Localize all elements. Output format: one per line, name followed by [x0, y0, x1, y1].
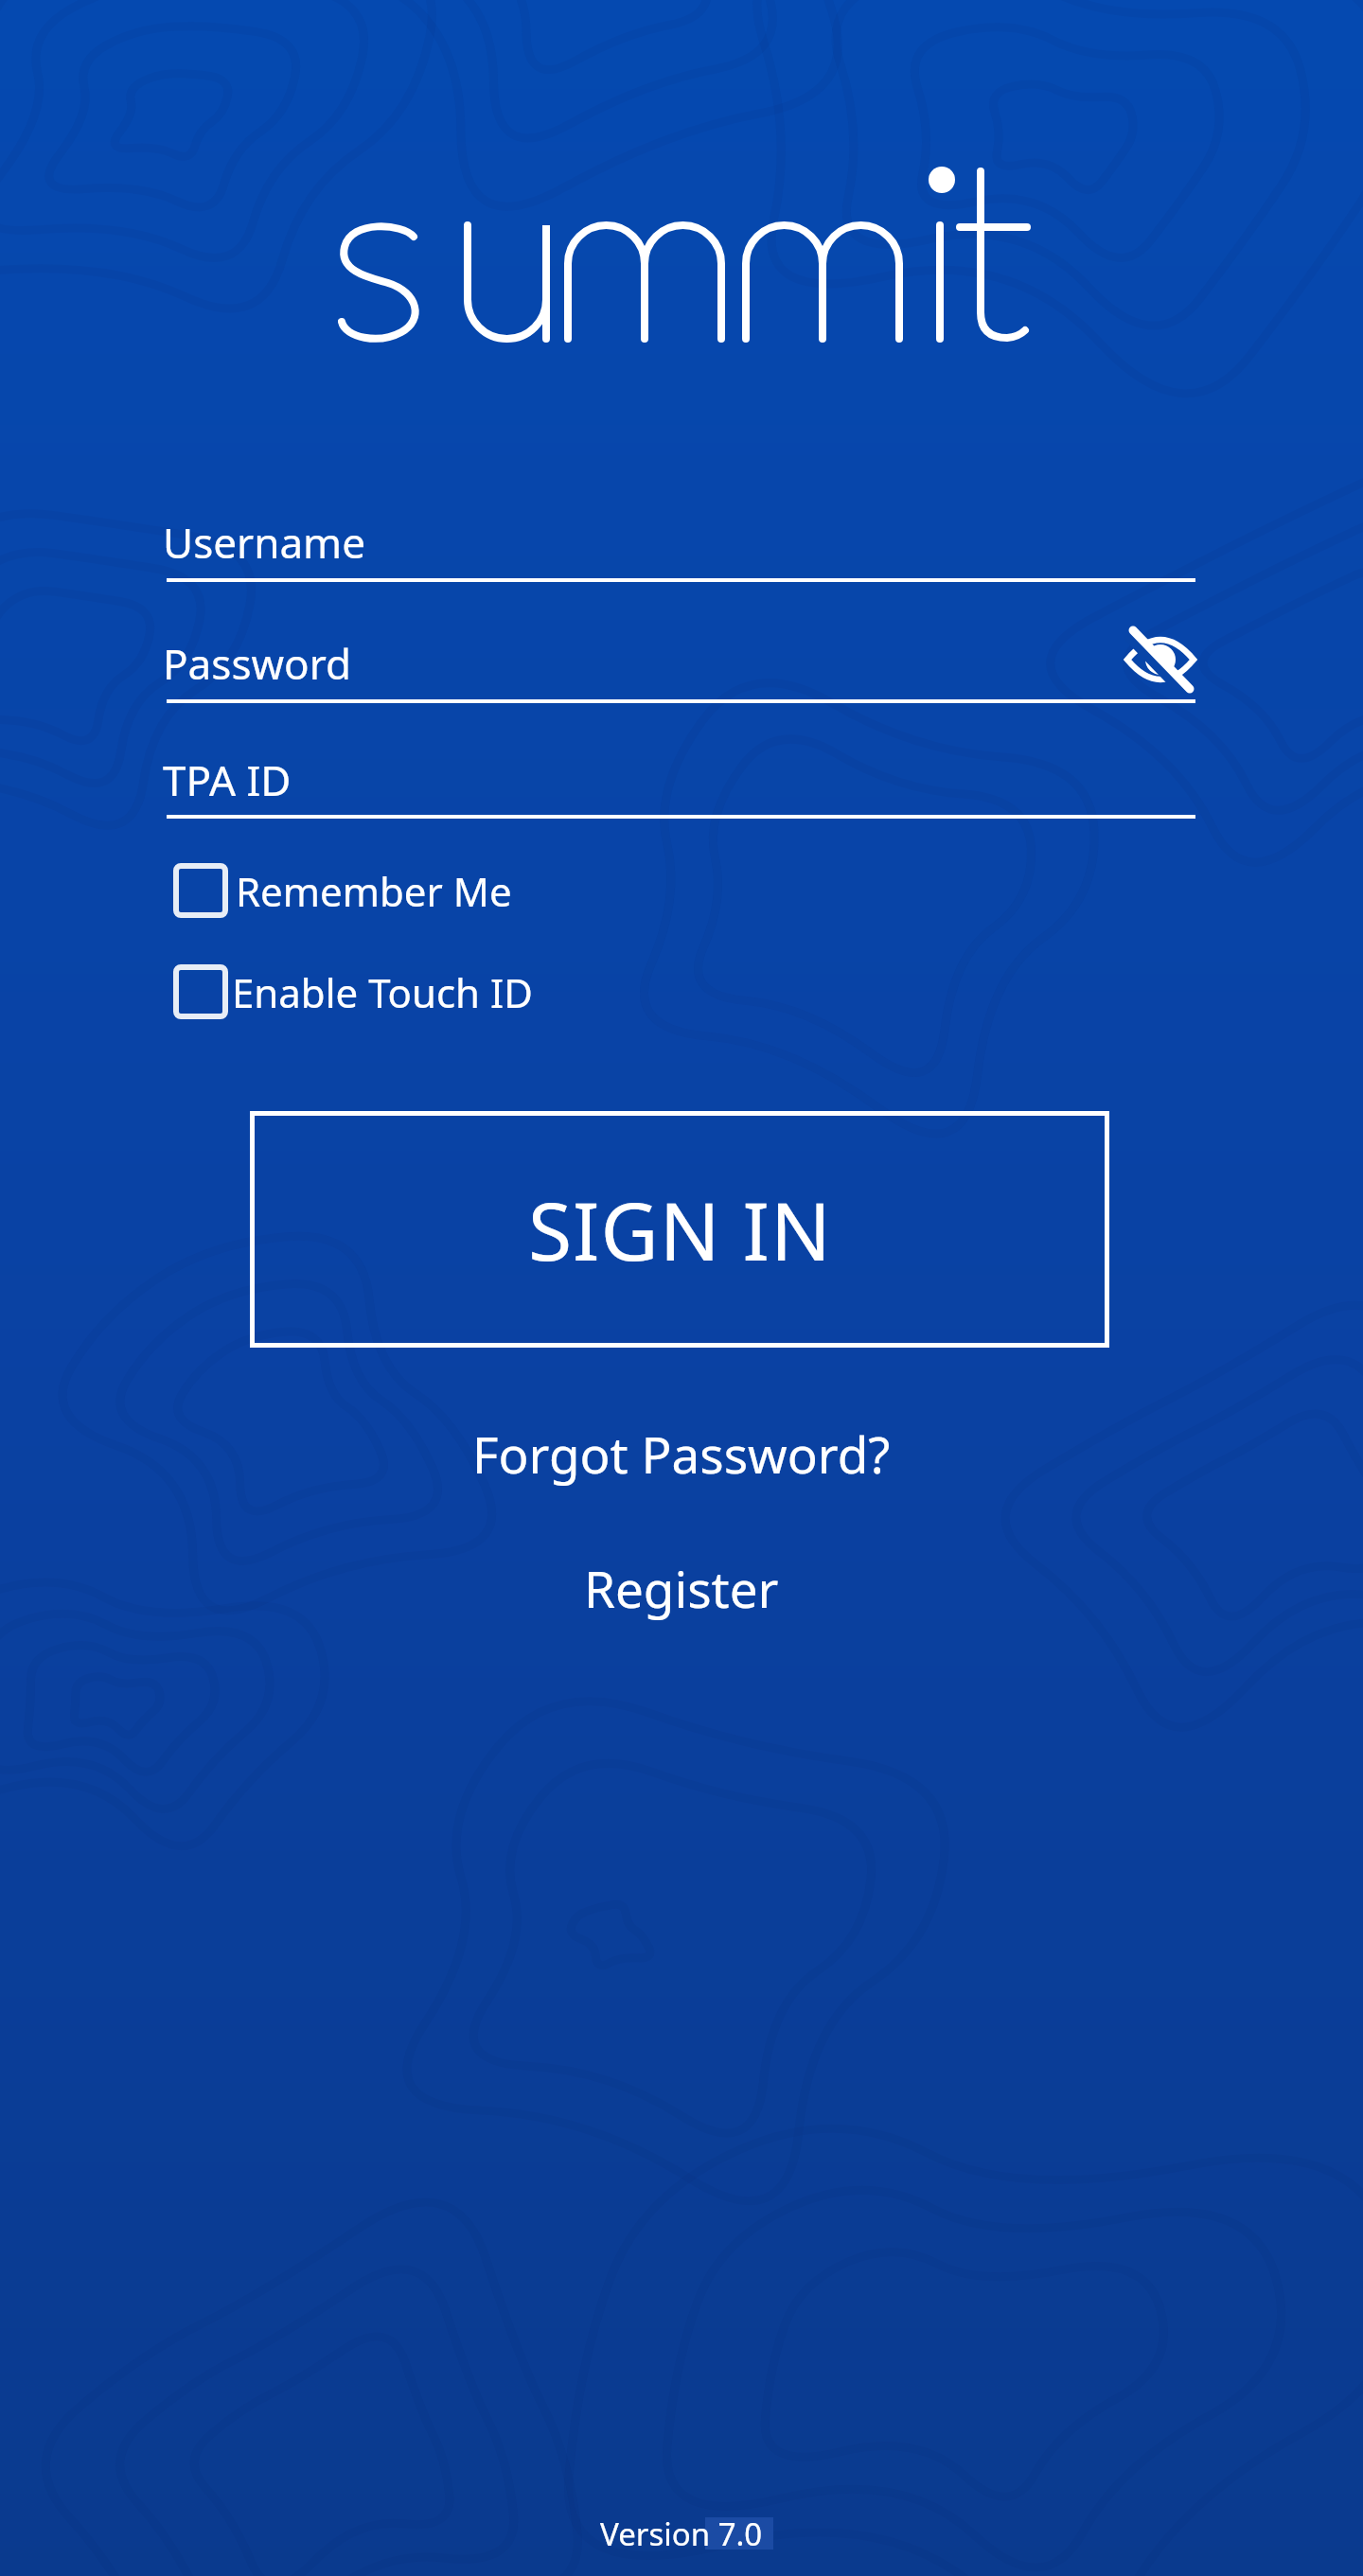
button[interactable]: TPA ID — [163, 751, 1192, 818]
staticText: Remember Me — [236, 864, 512, 918]
staticText: TPA ID — [163, 751, 292, 808]
button[interactable]: Remember Me — [173, 863, 512, 918]
staticText: Username — [163, 514, 366, 571]
button[interactable]: Password — [163, 635, 1192, 701]
staticText: Password — [163, 635, 352, 692]
staticText: Forgot Password? — [472, 1420, 891, 1488]
button[interactable]: Enable Touch ID — [173, 964, 533, 1019]
staticText: SIGN IN — [528, 1175, 832, 1283]
button[interactable]: SIGN IN — [250, 1111, 1109, 1348]
staticText: Version 7.0 — [600, 2513, 763, 2555]
button[interactable]: Username — [163, 514, 1192, 580]
button[interactable] — [1122, 625, 1202, 691]
button[interactable]: Register — [584, 1554, 779, 1622]
staticText: Enable Touch ID — [232, 965, 533, 1019]
button[interactable]: Forgot Password? — [472, 1420, 891, 1488]
staticText: Register — [584, 1554, 779, 1622]
